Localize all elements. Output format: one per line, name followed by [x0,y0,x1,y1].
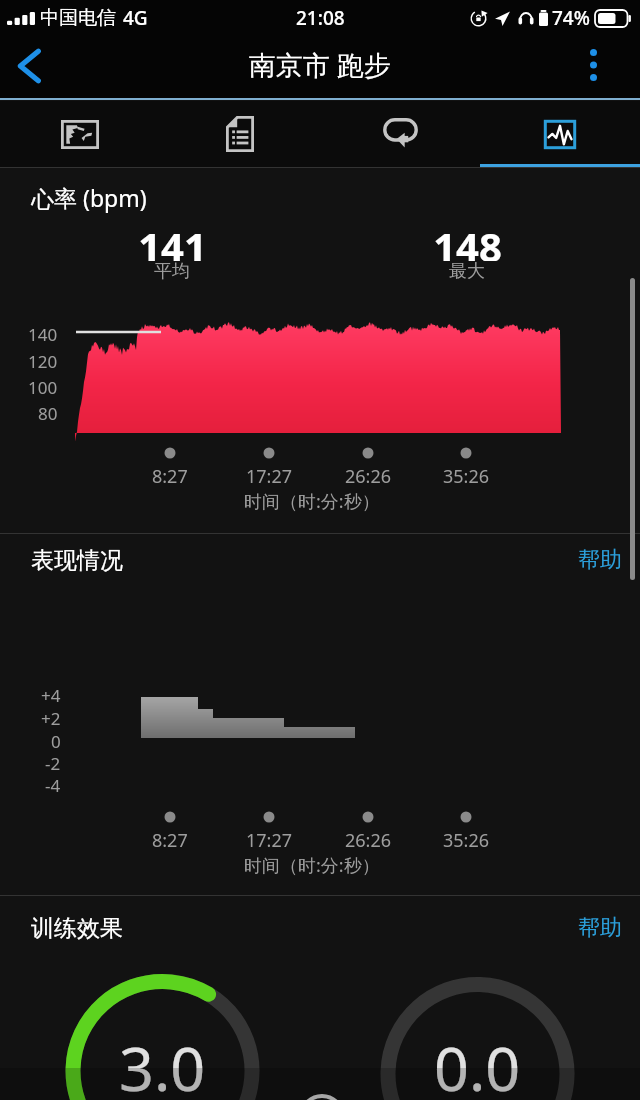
button[interactable]: More options [566,33,620,97]
staticText: 35:26 [443,828,490,853]
staticText: 17:27 [246,464,293,489]
staticText: 141 [138,219,207,261]
staticText: 17:27 [246,828,293,853]
staticText: 中国电信 [40,6,116,30]
staticText: 平均 [154,260,190,283]
button[interactable]: 帮助 [578,914,628,946]
staticText: 帮助 [578,546,622,574]
staticText: 表现情况 [31,546,123,575]
staticText: 140 [28,323,58,346]
staticText: 26:26 [345,464,392,489]
staticText: 帮助 [578,914,622,942]
staticText: 8:27 [152,464,188,489]
staticText: -4 [45,774,61,797]
staticText: 74% [552,5,590,31]
staticText: +2 [41,707,61,730]
staticText: 训练效果 [31,914,123,943]
staticText: 80 [38,402,58,425]
button[interactable]: Back [0,34,60,98]
button[interactable]: Details [160,101,320,167]
staticText: 35:26 [443,464,490,489]
staticText: +4 [41,684,61,707]
button[interactable]: Charts [480,101,640,167]
staticText: 26:26 [345,828,392,853]
staticText: 最大 [449,260,485,283]
staticText: -2 [45,752,61,775]
staticText: 148 [433,219,502,261]
button[interactable]: 帮助 [578,546,628,578]
staticText: 0.0 [434,1026,521,1100]
staticText: 时间（时:分:秒） [244,853,380,878]
staticText: 21:08 [296,5,345,31]
staticText: 120 [28,350,58,373]
staticText: 时间（时:分:秒） [244,489,380,514]
button[interactable]: Map [0,101,160,167]
staticText: 心率 (bpm) [31,182,147,213]
staticText: 8:27 [152,828,188,853]
staticText: 0 [51,730,61,753]
staticText: 4G [123,5,148,31]
staticText: 100 [28,376,58,399]
staticText: 3.0 [119,1026,206,1100]
button[interactable]: Laps [320,101,480,167]
staticText: 南京市 跑步 [249,46,392,83]
